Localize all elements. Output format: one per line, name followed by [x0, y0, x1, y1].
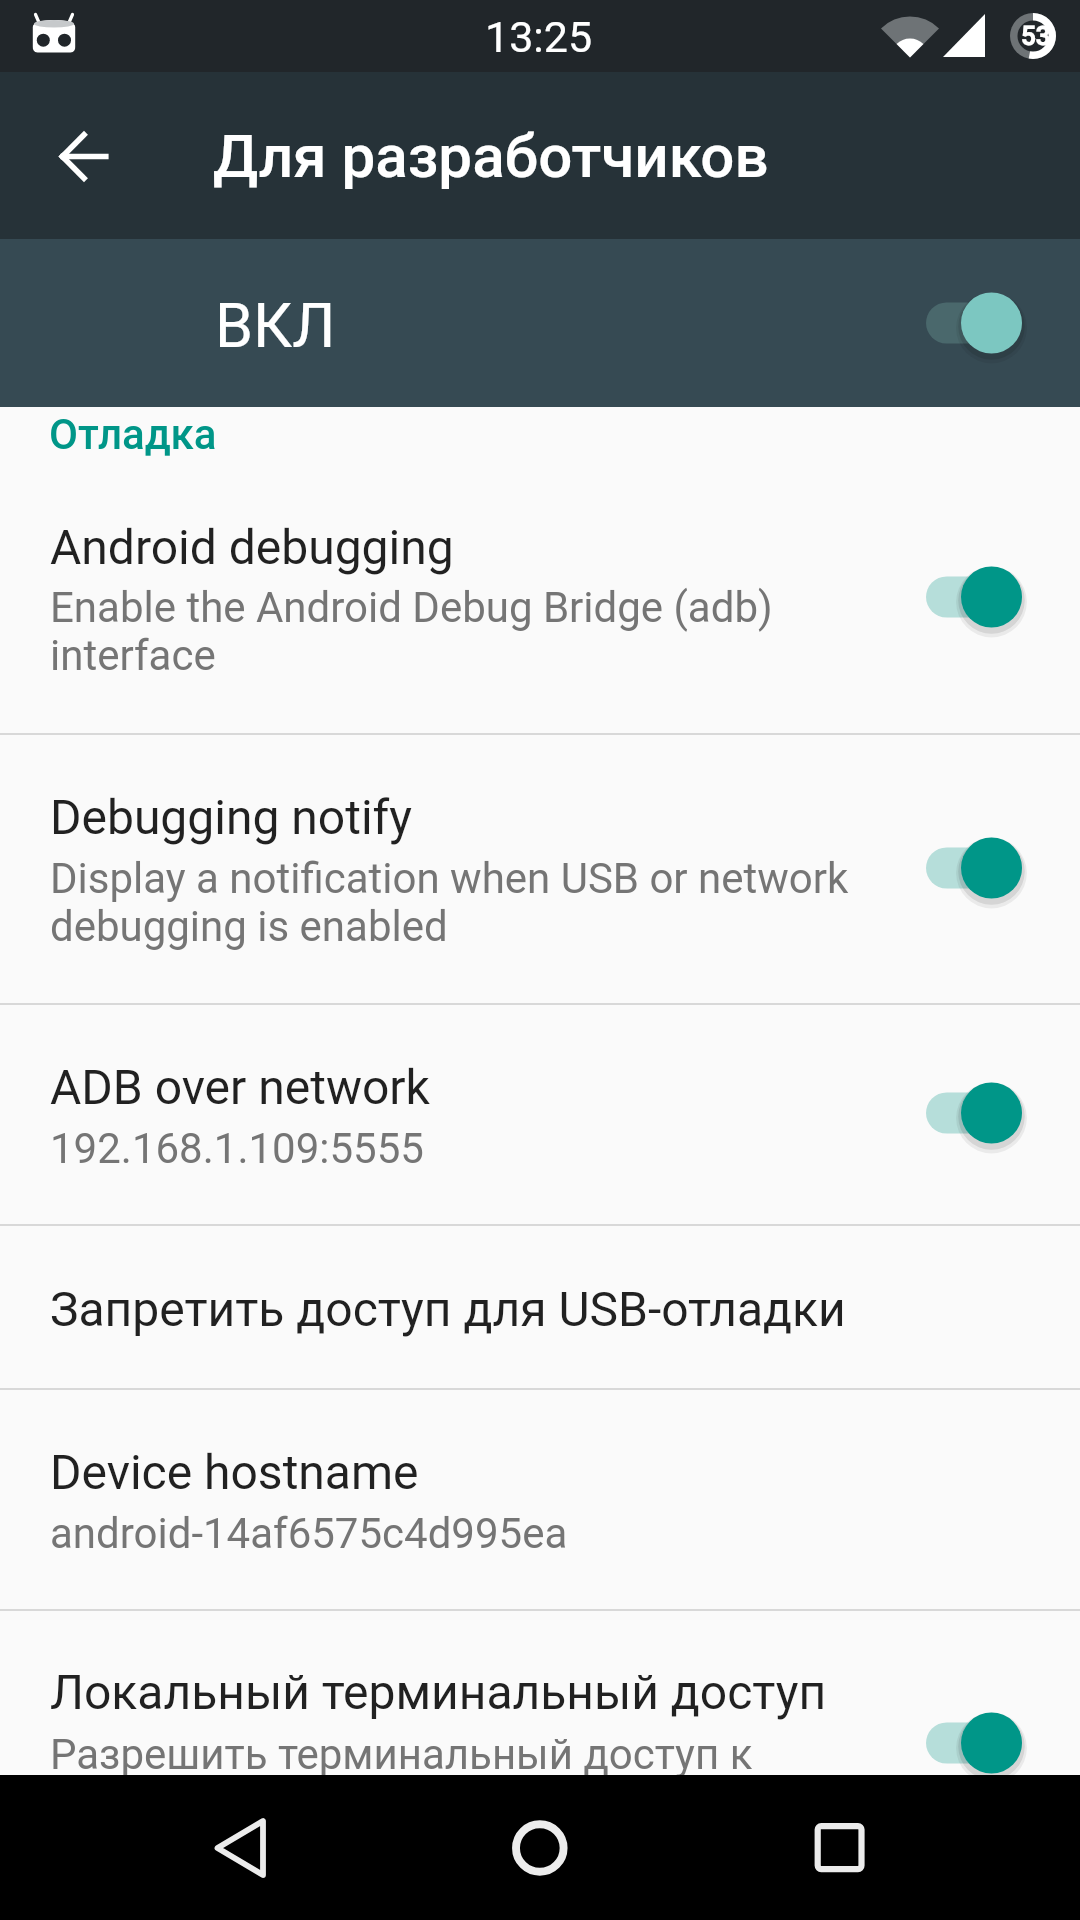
staticText: Запретить доступ для USB-отладки — [50, 1281, 846, 1337]
button[interactable]: Back — [170, 1778, 310, 1918]
staticText: Device hostname — [50, 1444, 419, 1500]
staticText: Android debugging — [50, 519, 454, 575]
staticText: ВКЛ — [215, 290, 336, 361]
staticText: 13:25 — [485, 12, 593, 62]
button[interactable]: Локальный терминальный доступ — [0, 1611, 1080, 1775]
button[interactable]: ВКЛ — [0, 239, 1080, 407]
staticText: Для разработчиков — [213, 121, 769, 191]
button[interactable]: Android debugging — [0, 480, 1080, 733]
button[interactable]: Device hostname — [0, 1390, 1080, 1609]
button[interactable]: Home — [470, 1778, 610, 1918]
button[interactable]: Debugging notify — [0, 735, 1080, 1003]
staticText: Локальный терминальный доступ — [50, 1664, 827, 1720]
staticText: Debugging notify — [50, 789, 412, 845]
staticText: android-14af6575c4d995ea — [50, 1509, 568, 1558]
staticText: Разрешить терминальный доступ к — [50, 1730, 753, 1779]
staticText: Отладка — [49, 410, 217, 459]
staticText: 53 — [1021, 21, 1051, 51]
staticText: Display a notification when USB or netwo… — [50, 854, 849, 952]
staticText: 192.168.1.109:5555 — [50, 1124, 424, 1173]
button[interactable]: Recent apps — [770, 1778, 910, 1918]
staticText: ADB over network — [50, 1059, 430, 1115]
staticText: Enable the Android Debug Bridge (adb) in… — [50, 583, 773, 681]
button[interactable]: ADB over network — [0, 1005, 1080, 1224]
button[interactable]: Запретить доступ для USB-отладки — [0, 1226, 1080, 1388]
button[interactable]: Back — [24, 84, 144, 227]
